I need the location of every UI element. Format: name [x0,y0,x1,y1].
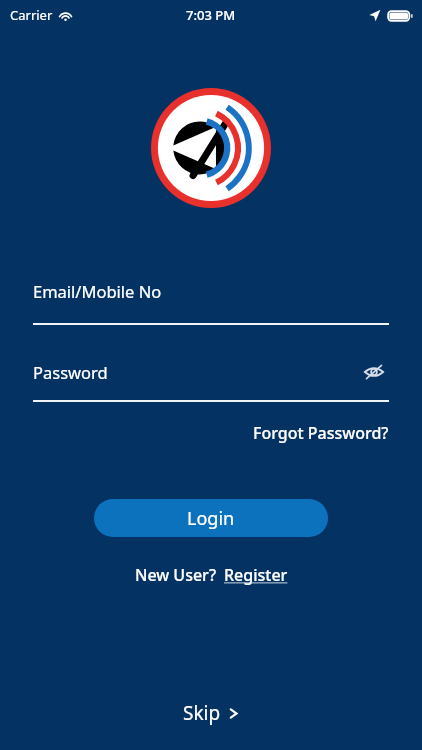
staticText: Register [224,564,288,586]
button[interactable]: Forgot Password? [253,418,389,448]
button[interactable]: Show password [359,357,389,387]
button[interactable]: Password [33,357,389,402]
button[interactable]: Login [94,499,328,537]
staticText: Email/Mobile No [33,280,162,302]
button[interactable]: Skip [169,694,253,732]
staticText: Skip [183,700,221,726]
button[interactable]: Email/Mobile No [33,280,389,325]
staticText: New User? [135,564,217,586]
button[interactable]: New User? [129,560,294,590]
staticText: 7:03 PM [186,6,236,24]
staticText: Forgot Password? [253,422,389,444]
staticText: Carrier [10,6,53,24]
staticText: Login [187,506,235,531]
staticText: Password [33,361,108,383]
